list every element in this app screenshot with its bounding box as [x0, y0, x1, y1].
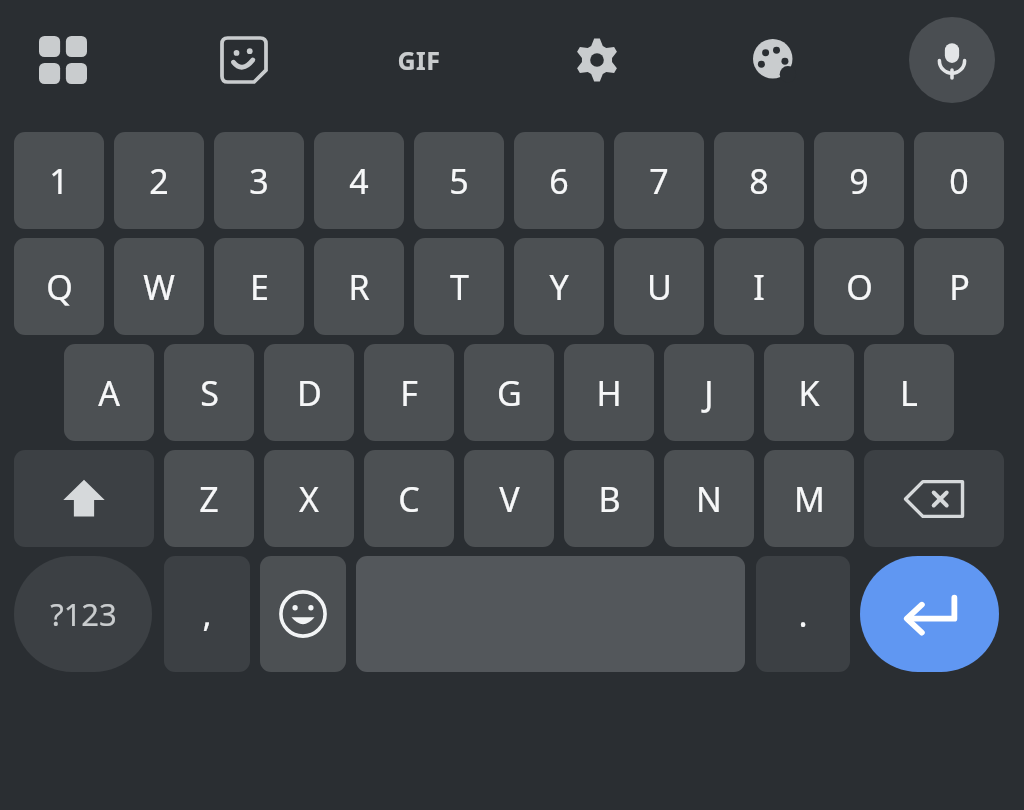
button[interactable]: ?123 — [14, 556, 152, 672]
staticText: C — [398, 476, 420, 522]
button[interactable]: Backspace — [864, 450, 1004, 547]
staticText: 6 — [549, 158, 569, 204]
button[interactable]: E — [214, 238, 304, 335]
button[interactable]: 0 — [914, 132, 1004, 229]
staticText: 7 — [649, 158, 669, 204]
staticText: K — [798, 370, 820, 416]
button[interactable]: D — [264, 344, 354, 441]
button[interactable]: Voice input — [909, 17, 995, 103]
button[interactable]: M — [764, 450, 854, 547]
staticText: 5 — [449, 158, 469, 204]
button[interactable]: 1 — [14, 132, 104, 229]
button[interactable]: 7 — [614, 132, 704, 229]
button[interactable]: K — [764, 344, 854, 441]
staticText: Q — [46, 264, 73, 310]
staticText: G — [497, 370, 522, 416]
button[interactable]: N — [664, 450, 754, 547]
staticText: W — [143, 264, 175, 310]
button[interactable]: 8 — [714, 132, 804, 229]
button[interactable]: G — [464, 344, 554, 441]
button[interactable]: T — [414, 238, 504, 335]
staticText: 9 — [849, 158, 869, 204]
button[interactable]: C — [364, 450, 454, 547]
button[interactable]: Theme — [738, 24, 810, 96]
staticText: Y — [549, 264, 569, 310]
button[interactable]: X — [264, 450, 354, 547]
staticText: 3 — [249, 158, 269, 204]
staticText: I — [753, 264, 765, 310]
button[interactable]: O — [814, 238, 904, 335]
staticText: R — [348, 264, 370, 310]
button[interactable]: F — [364, 344, 454, 441]
staticText: U — [647, 264, 672, 310]
staticText: GIF — [397, 43, 441, 77]
staticText: V — [499, 476, 520, 522]
button[interactable]: W — [114, 238, 204, 335]
staticText: 0 — [949, 158, 969, 204]
button[interactable]: V — [464, 450, 554, 547]
button[interactable]: Y — [514, 238, 604, 335]
staticText: D — [297, 370, 322, 416]
button[interactable]: L — [864, 344, 954, 441]
button[interactable]: . — [756, 556, 850, 672]
button[interactable]: Stickers — [208, 24, 280, 96]
staticText: X — [299, 476, 319, 522]
button[interactable]: R — [314, 238, 404, 335]
staticText: 8 — [749, 158, 769, 204]
staticText: A — [98, 370, 120, 416]
button[interactable]: Switch keyboard — [27, 24, 99, 96]
staticText: B — [598, 476, 621, 522]
button[interactable]: Z — [164, 450, 254, 547]
button[interactable]: Q — [14, 238, 104, 335]
staticText: , — [202, 591, 212, 637]
button[interactable]: A — [64, 344, 154, 441]
staticText: P — [949, 264, 970, 310]
button[interactable]: 4 — [314, 132, 404, 229]
button[interactable]: P — [914, 238, 1004, 335]
button[interactable]: 6 — [514, 132, 604, 229]
staticText: 2 — [149, 158, 169, 204]
button[interactable]: 3 — [214, 132, 304, 229]
staticText: S — [200, 370, 219, 416]
staticText: . — [798, 591, 808, 637]
staticText: O — [846, 264, 873, 310]
button[interactable]: S — [164, 344, 254, 441]
staticText: E — [250, 264, 269, 310]
button[interactable]: 9 — [814, 132, 904, 229]
staticText: M — [794, 476, 825, 522]
button[interactable]: H — [564, 344, 654, 441]
staticText: 4 — [349, 158, 369, 204]
button[interactable]: Settings — [561, 24, 633, 96]
staticText: ?123 — [50, 593, 117, 635]
button[interactable]: 2 — [114, 132, 204, 229]
button[interactable]: , — [164, 556, 250, 672]
staticText: Z — [199, 476, 219, 522]
staticText: F — [400, 370, 418, 416]
button[interactable]: GIF — [383, 24, 455, 96]
staticText: H — [596, 370, 622, 416]
staticText: 1 — [49, 158, 69, 204]
staticText: J — [704, 370, 714, 416]
button[interactable]: Shift — [14, 450, 154, 547]
button[interactable]: 5 — [414, 132, 504, 229]
staticText: T — [450, 264, 469, 310]
button[interactable]: Enter — [860, 556, 999, 672]
button[interactable]: Emoji — [260, 556, 346, 672]
button[interactable]: I — [714, 238, 804, 335]
staticText: N — [696, 476, 722, 522]
staticText: L — [900, 370, 918, 416]
button[interactable]: J — [664, 344, 754, 441]
button[interactable]: U — [614, 238, 704, 335]
button[interactable]: B — [564, 450, 654, 547]
